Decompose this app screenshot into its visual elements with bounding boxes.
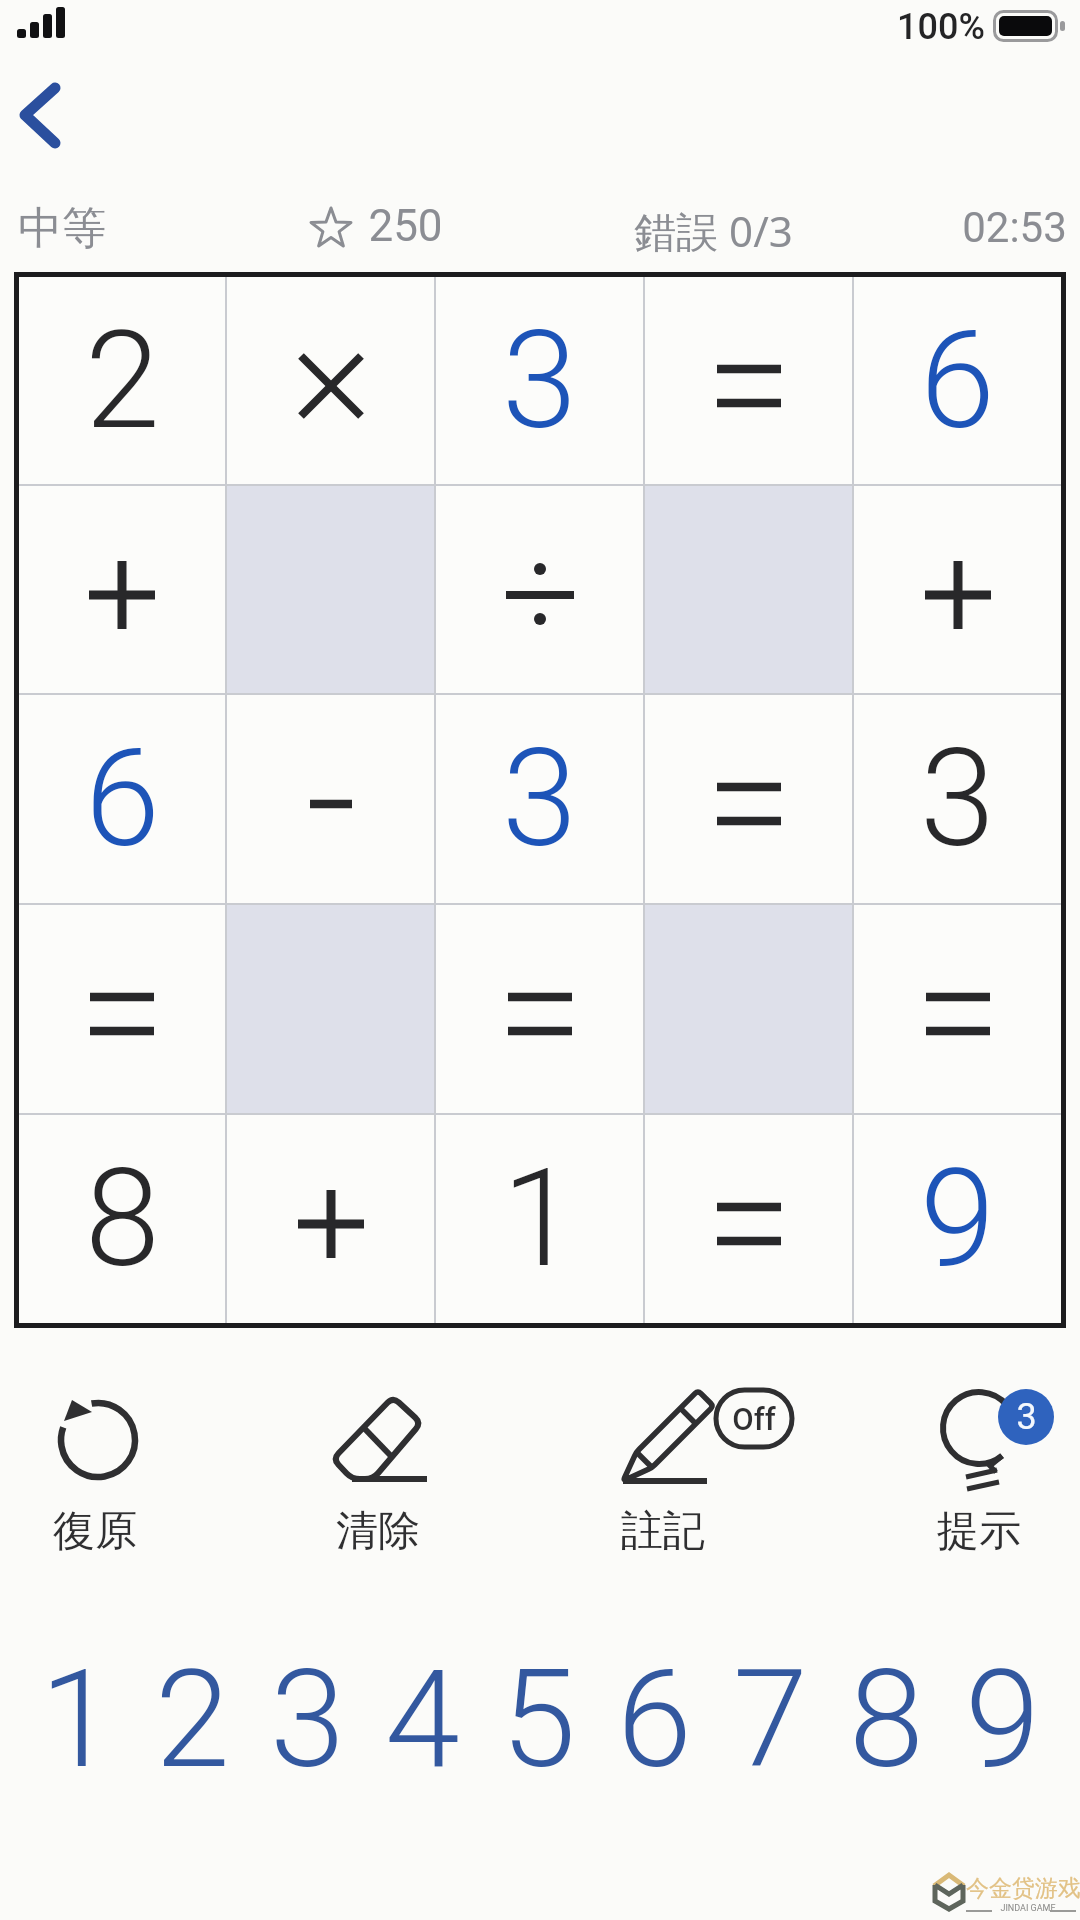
button[interactable] bbox=[436, 486, 643, 693]
staticText: 2 bbox=[85, 302, 160, 460]
staticText: 1 bbox=[502, 1140, 577, 1298]
button[interactable]: 1 bbox=[436, 1115, 643, 1323]
staticText: 4 bbox=[385, 1641, 460, 1799]
button[interactable] bbox=[645, 695, 852, 903]
button[interactable]: 3 bbox=[918, 1390, 1068, 1555]
button[interactable]: 9 bbox=[944, 1640, 1060, 1800]
button[interactable] bbox=[19, 905, 225, 1113]
staticText: 3 bbox=[920, 720, 995, 878]
button[interactable]: 8 bbox=[19, 1115, 225, 1323]
staticText: 7 bbox=[733, 1641, 808, 1799]
staticText: 2 bbox=[155, 1641, 230, 1799]
button[interactable]: 9 bbox=[854, 1115, 1061, 1323]
staticText: 3 bbox=[502, 720, 577, 878]
button[interactable] bbox=[227, 1115, 434, 1323]
staticText: 3 bbox=[270, 1641, 345, 1799]
staticText: 3 bbox=[502, 302, 577, 460]
button[interactable]: 7 bbox=[712, 1640, 828, 1800]
staticText: 清除 bbox=[336, 1505, 420, 1558]
button[interactable] bbox=[854, 905, 1061, 1113]
staticText: 1 bbox=[40, 1641, 115, 1799]
staticText: 6 bbox=[920, 302, 995, 460]
staticText: JINDAI GAME bbox=[1000, 1903, 1056, 1914]
staticText: 02:53 bbox=[962, 203, 1067, 252]
button[interactable] bbox=[19, 486, 225, 693]
button[interactable]: 清除 bbox=[318, 1390, 438, 1555]
staticText: 5 bbox=[501, 1641, 576, 1799]
staticText: 9 bbox=[965, 1641, 1040, 1799]
button[interactable]: 1 bbox=[20, 1640, 135, 1800]
button[interactable]: 8 bbox=[828, 1640, 944, 1800]
staticText: 註記 bbox=[621, 1505, 705, 1558]
staticText: 8 bbox=[85, 1140, 160, 1298]
button[interactable]: 2 bbox=[135, 1640, 250, 1800]
button[interactable] bbox=[645, 277, 852, 484]
button[interactable]: 5 bbox=[480, 1640, 596, 1800]
button[interactable]: 3 bbox=[854, 695, 1061, 903]
staticText: 提示 bbox=[937, 1505, 1021, 1558]
button[interactable] bbox=[8, 72, 96, 160]
staticText: 100% bbox=[897, 6, 985, 48]
staticText: 今金贷游戏 bbox=[966, 1874, 1080, 1903]
button[interactable]: Off bbox=[600, 1390, 800, 1555]
staticText: 6 bbox=[617, 1641, 692, 1799]
button[interactable] bbox=[436, 905, 643, 1113]
button[interactable] bbox=[854, 486, 1061, 693]
button[interactable]: 3 bbox=[436, 695, 643, 903]
staticText: 錯誤 0/3 bbox=[634, 202, 793, 259]
staticText: 6 bbox=[85, 720, 160, 878]
staticText: 9 bbox=[920, 1140, 995, 1298]
staticText: 復原 bbox=[53, 1505, 137, 1558]
button[interactable]: 4 bbox=[365, 1640, 480, 1800]
staticText: 中等 bbox=[18, 201, 106, 256]
button[interactable]: 6 bbox=[854, 277, 1061, 484]
staticText: 250 bbox=[368, 200, 443, 252]
button[interactable]: 2 bbox=[19, 277, 225, 484]
button[interactable] bbox=[227, 695, 434, 903]
staticText: Off bbox=[732, 1401, 776, 1437]
button[interactable] bbox=[645, 1115, 852, 1323]
staticText: 8 bbox=[849, 1641, 924, 1799]
button[interactable]: 3 bbox=[436, 277, 643, 484]
button[interactable] bbox=[227, 277, 434, 484]
button[interactable]: 6 bbox=[19, 695, 225, 903]
button[interactable]: 6 bbox=[596, 1640, 712, 1800]
staticText: 3 bbox=[1016, 1396, 1037, 1438]
button[interactable]: 復原 bbox=[35, 1390, 155, 1555]
button[interactable]: 3 bbox=[250, 1640, 365, 1800]
